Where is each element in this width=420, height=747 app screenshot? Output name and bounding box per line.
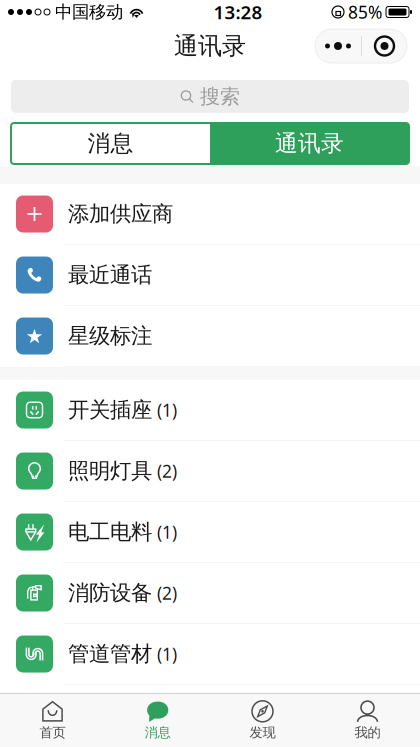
staticText: 星级标注 <box>68 323 152 349</box>
button[interactable]: 消防设备 <box>0 563 420 624</box>
button[interactable]: 通讯录 <box>210 123 409 164</box>
staticText: 开关插座 <box>68 397 152 423</box>
staticText: (2) <box>157 581 177 604</box>
button[interactable]: 搜索 <box>11 80 409 113</box>
staticText: 中国移动 <box>55 1 123 23</box>
button[interactable]: 星级标注 <box>0 306 420 367</box>
staticText: 发现 <box>249 724 275 741</box>
button[interactable]: Capture <box>362 29 407 63</box>
button[interactable]: 开关插座 <box>0 380 420 441</box>
button[interactable]: More <box>315 29 361 63</box>
staticText: 消息 <box>87 130 133 157</box>
staticText: 管道管材 <box>68 641 152 667</box>
button[interactable]: 消息 <box>11 123 210 164</box>
button[interactable]: 发现 <box>210 694 315 747</box>
button[interactable]: 消息 <box>105 694 210 747</box>
button[interactable]: 照明灯具 <box>0 441 420 502</box>
staticText: 电工电料 <box>68 519 152 545</box>
staticText: 首页 <box>39 724 65 741</box>
staticText: 最近通话 <box>68 262 152 288</box>
staticText: (1) <box>157 520 177 543</box>
staticText: 通讯录 <box>275 130 344 157</box>
staticText: (2) <box>157 459 177 482</box>
staticText: (1) <box>157 398 177 421</box>
staticText: 通讯录 <box>174 31 246 61</box>
staticText: 照明灯具 <box>68 458 152 484</box>
button[interactable]: 首页 <box>0 694 105 747</box>
staticText: 85% <box>348 0 382 23</box>
button[interactable]: 最近通话 <box>0 245 420 306</box>
button[interactable]: 我的 <box>315 694 420 747</box>
staticText: 13:28 <box>213 0 262 24</box>
button[interactable]: 添加供应商 <box>0 184 420 245</box>
staticText: 消防设备 <box>68 580 152 606</box>
button[interactable]: 电工电料 <box>0 502 420 563</box>
staticText: (1) <box>157 642 177 665</box>
staticText: 我的 <box>354 724 380 741</box>
button[interactable]: 管道管材 <box>0 624 420 685</box>
staticText: 搜索 <box>200 84 240 109</box>
staticText: 添加供应商 <box>68 201 173 227</box>
staticText: 消息 <box>144 724 170 741</box>
